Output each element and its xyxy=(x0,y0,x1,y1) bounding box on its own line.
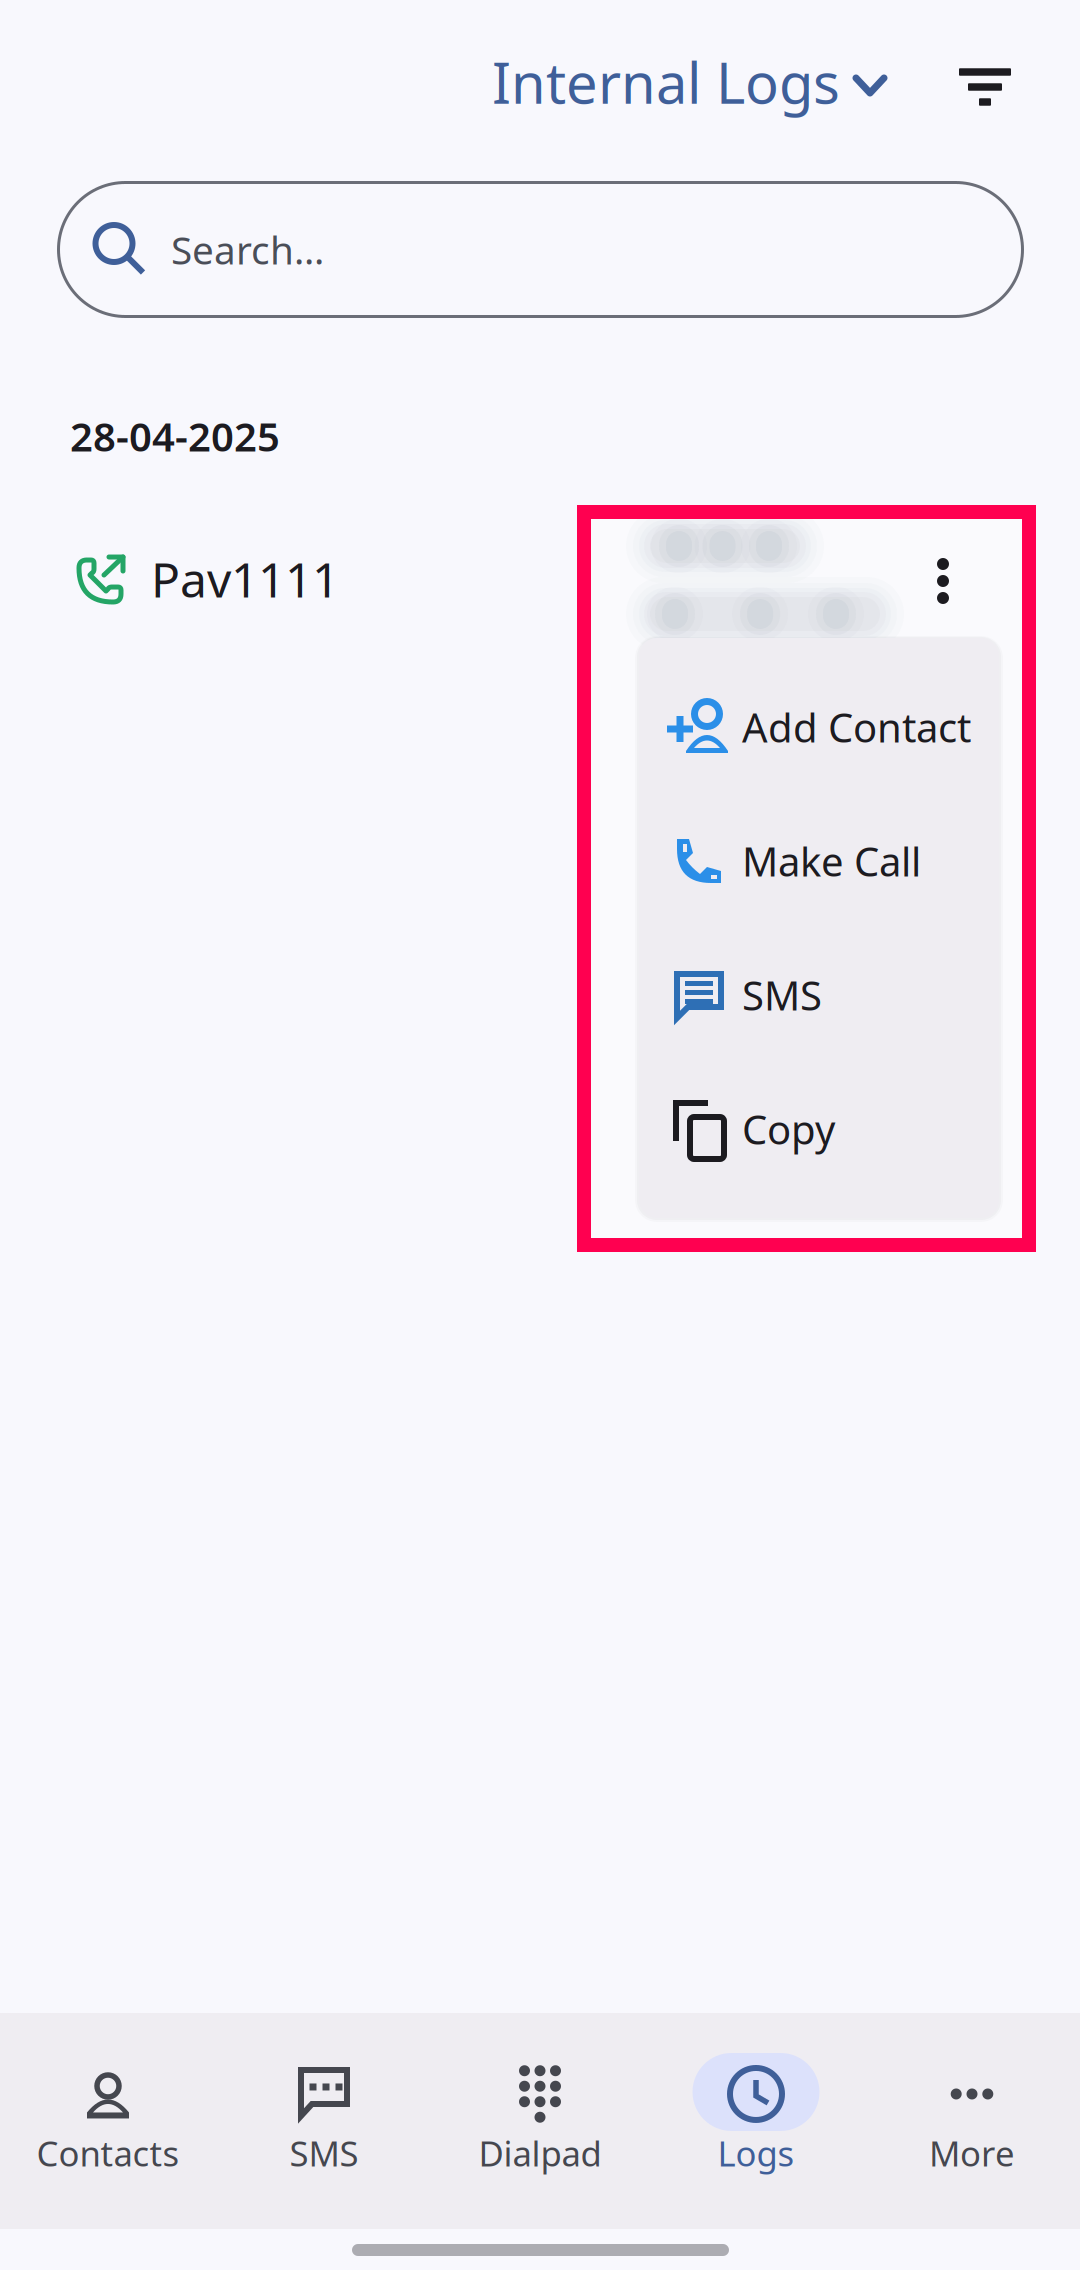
staticText: Pav1111 xyxy=(151,547,339,611)
staticText: Contacts xyxy=(36,2130,179,2176)
staticText: Dialpad xyxy=(478,2130,601,2176)
staticText: Make Call xyxy=(742,834,921,887)
button[interactable]: More xyxy=(864,2013,1080,2229)
staticText: Copy xyxy=(742,1102,835,1155)
staticText: 28-04-2025 xyxy=(70,409,280,462)
button[interactable]: Logs xyxy=(648,2013,864,2229)
staticText: Search... xyxy=(171,224,324,275)
button[interactable]: Dialpad xyxy=(432,2013,648,2229)
button[interactable]: Make Call xyxy=(639,794,999,928)
staticText: More xyxy=(929,2130,1015,2176)
staticText: Internal Logs xyxy=(492,45,840,119)
button[interactable]: SMS xyxy=(639,928,999,1062)
staticText: SMS xyxy=(289,2130,358,2176)
button[interactable]: More options xyxy=(937,558,949,604)
button[interactable]: Filter xyxy=(932,64,1038,110)
staticText: SMS xyxy=(742,968,822,1021)
button[interactable]: Copy xyxy=(639,1062,999,1196)
button[interactable]: SMS xyxy=(216,2013,432,2229)
button[interactable]: Contacts xyxy=(0,2013,216,2229)
staticText: Add Contact xyxy=(742,700,971,753)
button[interactable]: Search... xyxy=(57,181,1024,318)
button[interactable]: Internal Logs xyxy=(492,45,832,119)
staticText: Logs xyxy=(717,2130,794,2176)
button[interactable]: Add Contact xyxy=(639,660,999,794)
